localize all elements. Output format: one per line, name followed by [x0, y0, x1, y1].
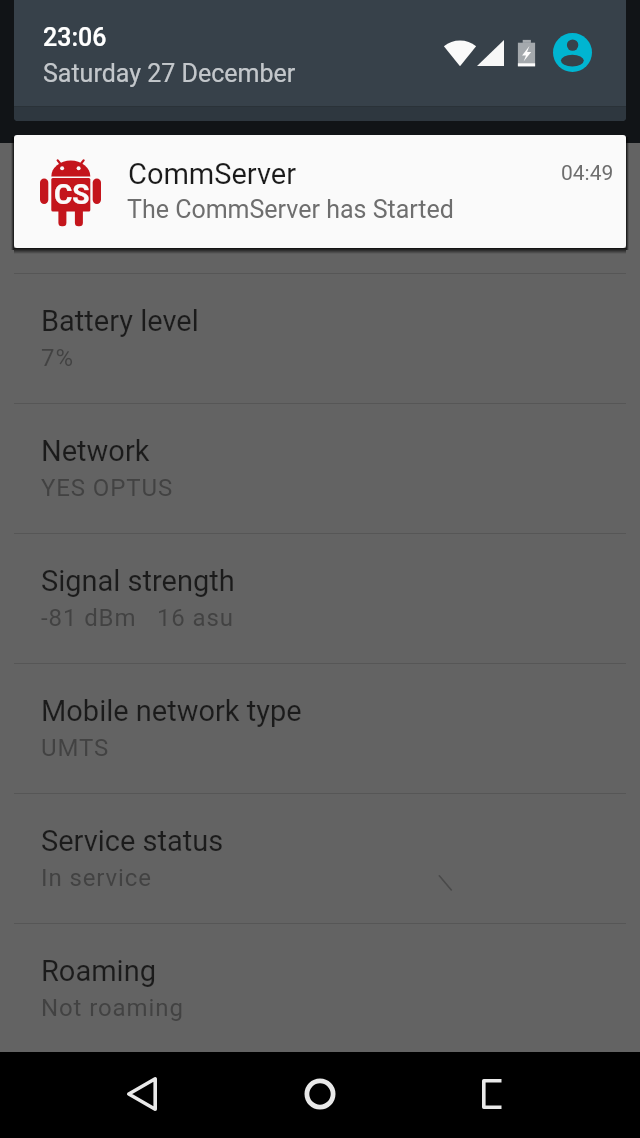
staticText: Battery level [41, 304, 199, 338]
staticText: Roaming [41, 954, 156, 988]
button[interactable]: Recent apps [465, 1061, 531, 1127]
button[interactable]: Back [109, 1061, 175, 1127]
button[interactable]: Signal strength [0, 533, 640, 663]
staticText: Mobile network type [41, 694, 302, 728]
button[interactable]: Home [287, 1061, 353, 1127]
staticText: In service [41, 864, 152, 892]
staticText: Signal strength [41, 564, 235, 598]
staticText: CS [54, 178, 90, 211]
button[interactable]: CS [14, 135, 626, 248]
staticText: CommServer [128, 157, 297, 191]
button[interactable]: Service status [0, 793, 640, 923]
staticText: 23:06 [43, 23, 107, 52]
button[interactable]: Network [0, 403, 640, 533]
staticText: YES OPTUS [41, 474, 174, 502]
staticText: Saturday 27 December [43, 59, 296, 88]
staticText: 04:49 [561, 161, 614, 186]
button[interactable]: Mobile network type [0, 663, 640, 793]
staticText: UMTS [41, 734, 110, 762]
button[interactable]: Battery level [0, 273, 640, 403]
button[interactable]: Roaming [0, 923, 640, 1053]
staticText: The CommServer has Started [127, 195, 454, 224]
staticText: Not roaming [41, 994, 184, 1022]
staticText: 7% [41, 344, 74, 372]
staticText: Service status [41, 824, 224, 858]
staticText: -81 dBm 16 asu [41, 604, 234, 632]
staticText: Network [41, 434, 150, 468]
